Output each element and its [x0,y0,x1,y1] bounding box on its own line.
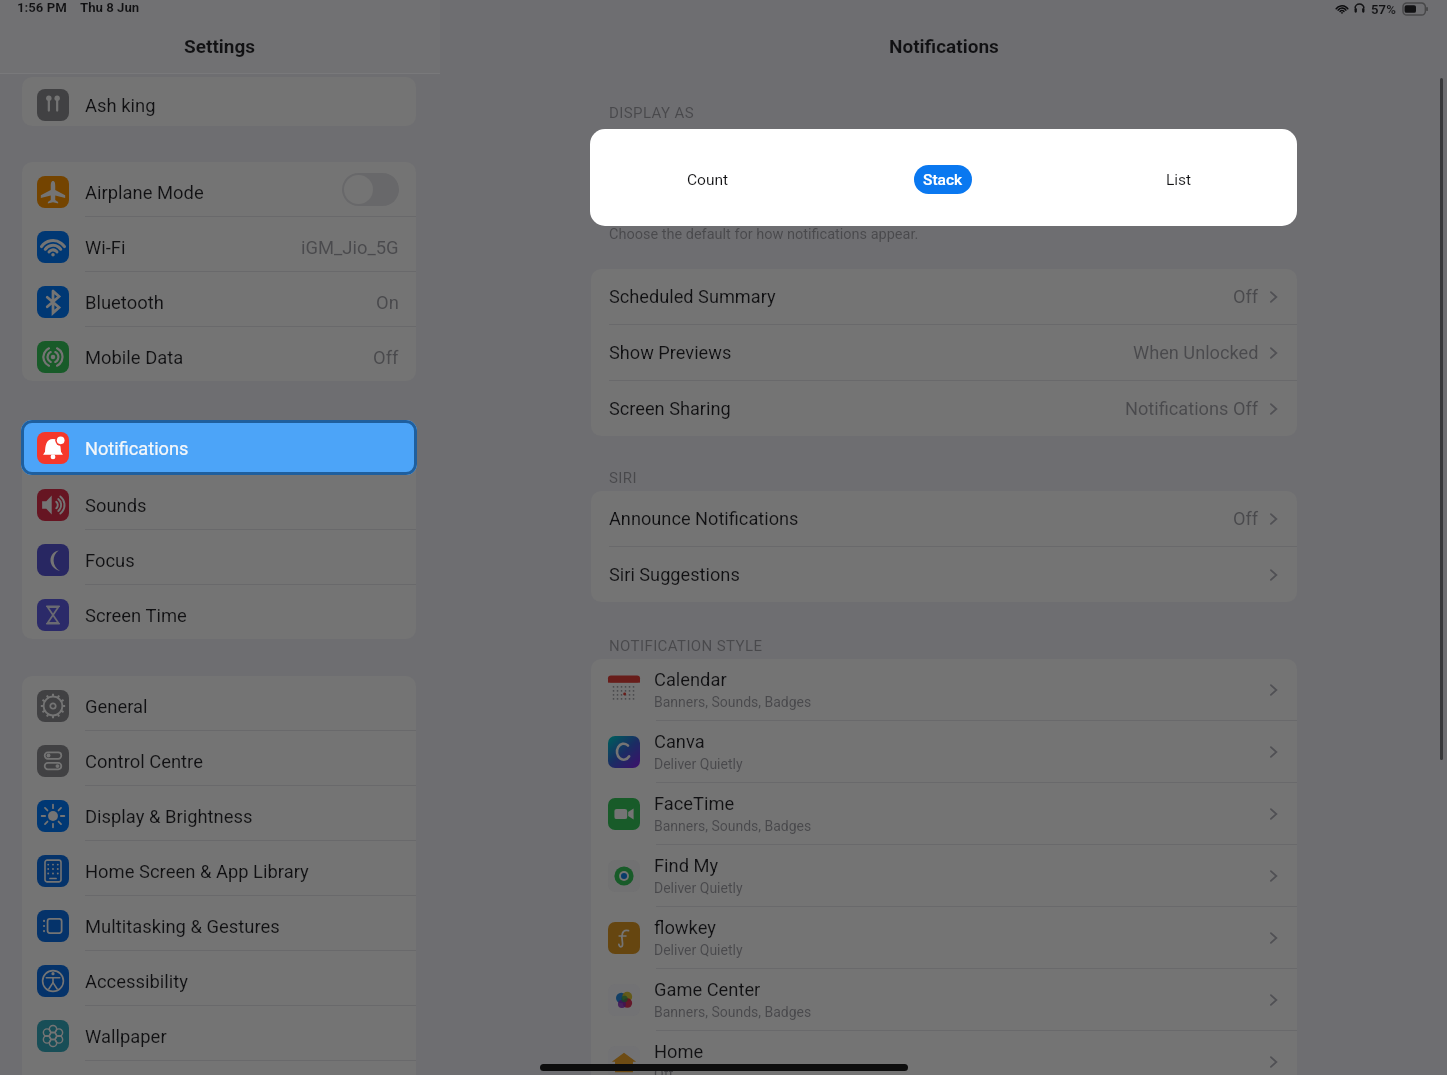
button[interactable]: Game Center [591,969,1297,1030]
button[interactable]: FaceTime [591,783,1297,844]
staticText: FaceTime [654,793,735,814]
staticText: flowkey [654,917,716,938]
staticText: Home Screen & App Library [85,861,309,883]
staticText: Notifications [889,35,999,57]
staticText: Deliver Quietly [654,880,743,896]
button[interactable]: Screen Time [22,585,416,639]
staticText: Screen Sharing [609,398,731,419]
staticText: Banners, Sounds, Badges [654,694,812,710]
staticText: Scheduled Summary [609,286,776,307]
staticText: Off [373,347,399,369]
staticText: Banners, Sounds, Badges [654,1004,812,1020]
button[interactable]: Calendar [591,659,1297,720]
staticText: Stack [923,171,963,189]
button[interactable]: Find My [591,845,1297,906]
button[interactable]: Count [590,131,825,226]
staticText: Wallpaper [85,1026,167,1048]
button[interactable]: Home [591,1031,1297,1075]
button[interactable]: General [22,676,416,730]
staticText: Settings [184,35,256,57]
button[interactable]: Announce Notifications [591,491,1297,546]
button[interactable]: Control Centre [22,731,416,785]
button[interactable]: List [1061,131,1297,226]
staticText: List [1166,171,1192,189]
staticText: Deliver Quietly [654,756,743,772]
staticText: Game Center [654,979,761,1000]
staticText: Screen Time [85,605,187,627]
staticText: Ash king [85,95,156,117]
button[interactable]: Siri Suggestions [591,547,1297,602]
staticText: Notifications [85,438,189,459]
staticText: Display & Brightness [85,806,253,828]
button[interactable]: Bluetooth [22,272,416,326]
button[interactable]: Airplane Mode [22,162,416,216]
button[interactable]: flowkey [591,907,1297,968]
button[interactable]: Home Screen & App Library [22,841,416,895]
button[interactable]: Mobile Data [22,327,416,381]
staticText: Control Centre [85,751,203,773]
staticText: Bluetooth [85,292,164,314]
staticText: Calendar [654,669,727,690]
staticText: Banners, Sounds, Badges [654,818,812,834]
button[interactable]: Stack [825,131,1061,226]
staticText: Multitasking & Gestures [85,916,280,938]
staticText: Focus [85,550,135,572]
staticText: Notifications Off [1125,398,1259,419]
button[interactable]: Sounds [22,475,416,529]
staticText: Thu 8 Jun [80,0,140,15]
button[interactable]: Show Previews [591,325,1297,380]
staticText: Airplane Mode [85,182,204,204]
staticText: iGM_Jio_5G [301,237,399,259]
staticText: Siri Suggestions [609,564,740,585]
staticText: Off [1233,286,1259,307]
button[interactable]: Scheduled Summary [591,269,1297,324]
staticText: General [85,696,148,718]
staticText: NOTIFICATION STYLE [609,637,763,655]
staticText: Find My [654,855,719,876]
staticText: Sounds [85,495,147,517]
staticText: Off [1233,508,1259,529]
staticText: 1:56 PM [17,0,67,15]
staticText: Home [654,1041,704,1062]
button[interactable]: Wallpaper [22,1006,416,1060]
staticText: When Unlocked [1133,342,1259,363]
button[interactable]: Notifications [21,420,417,475]
staticText: Off [654,1066,674,1075]
staticText: On [376,292,399,314]
staticText: Show Previews [609,342,732,363]
button[interactable]: Display & Brightness [22,786,416,840]
staticText: Count [687,171,729,189]
staticText: Accessibility [85,971,188,993]
button[interactable]: Accessibility [22,951,416,1005]
staticText: Mobile Data [85,347,184,369]
button[interactable]: Screen Sharing [591,381,1297,436]
staticText: Choose the default for how notifications… [609,226,919,243]
staticText: DISPLAY AS [609,104,695,122]
staticText: Deliver Quietly [654,942,743,958]
button[interactable]: Focus [22,530,416,584]
staticText: Announce Notifications [609,508,799,529]
button[interactable]: Airplane Mode toggle [342,173,399,206]
staticText: Wi-Fi [85,237,126,259]
button[interactable]: Canva [591,721,1297,782]
staticText: 57% [1371,2,1396,17]
button[interactable]: Wi-Fi [22,217,416,271]
staticText: Canva [654,731,705,752]
button[interactable]: Multitasking & Gestures [22,896,416,950]
staticText: SIRI [609,469,637,487]
button[interactable]: Ash king [22,77,416,126]
